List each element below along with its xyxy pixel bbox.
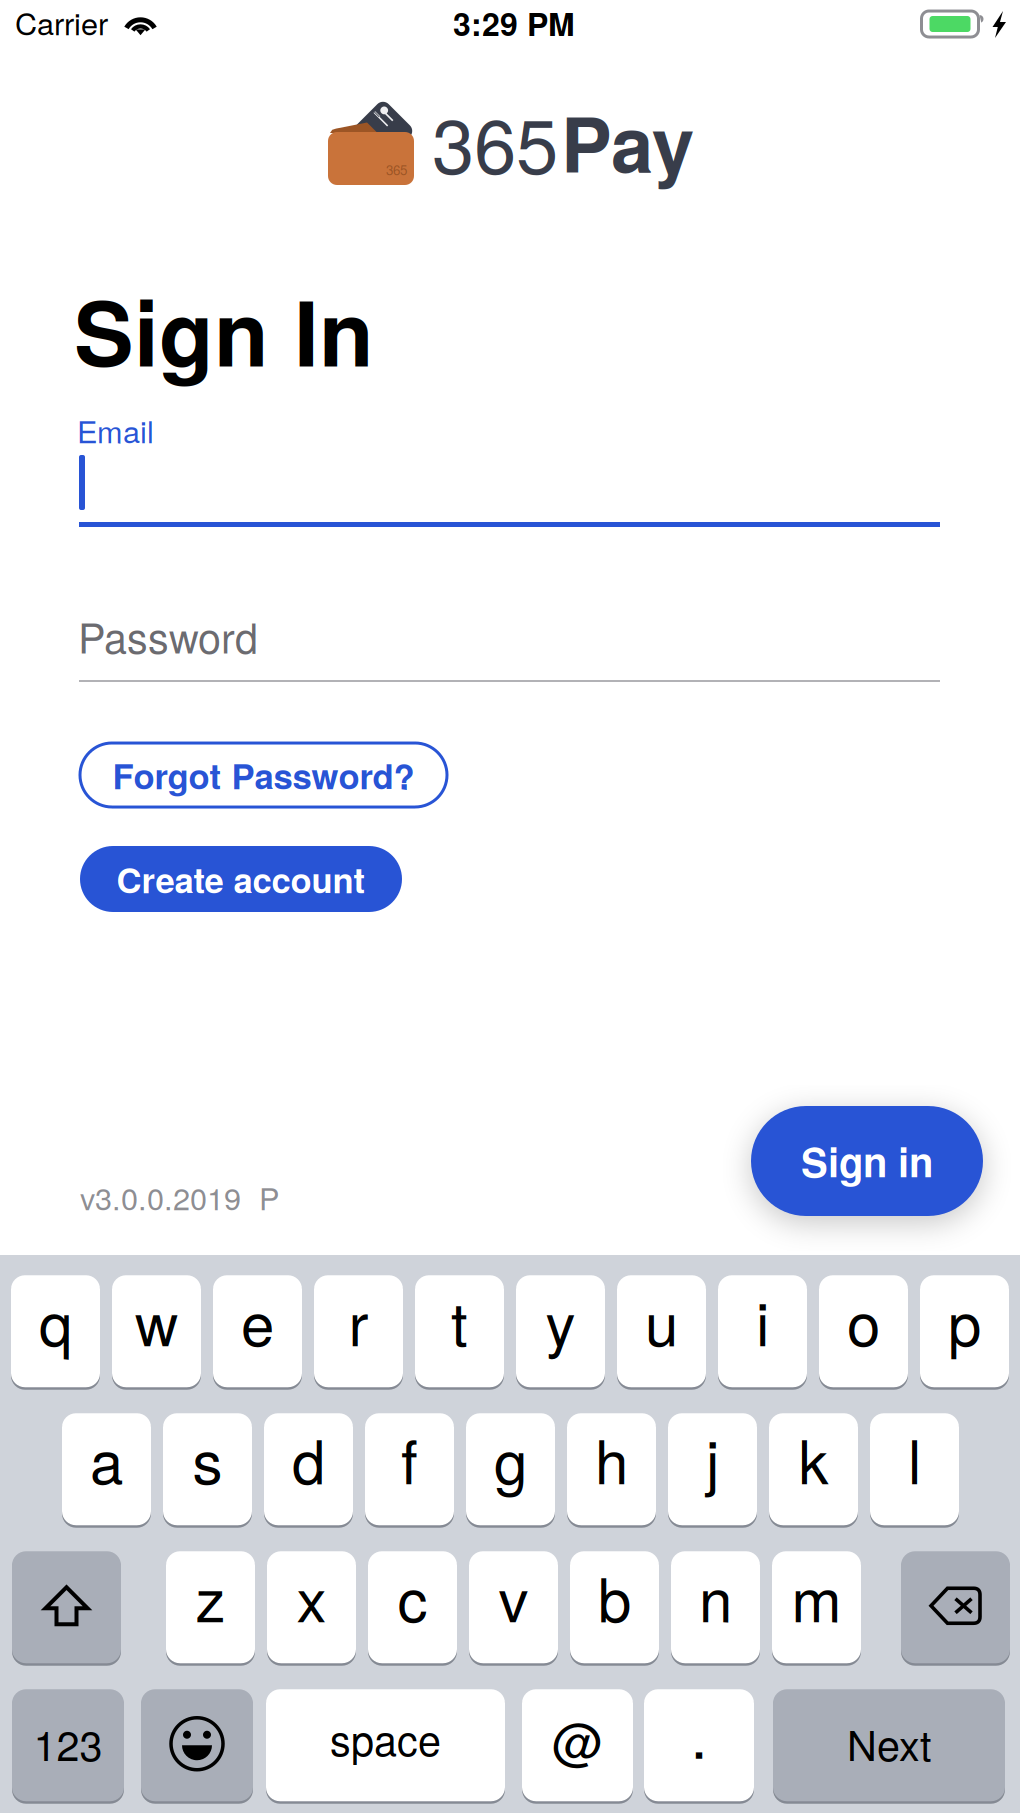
staticText: Email [77,408,154,452]
staticText: t [451,1277,468,1363]
staticText: . [690,1688,707,1776]
button[interactable]: w [112,1274,201,1388]
staticText: z [195,1553,225,1639]
staticText: @ [552,1703,603,1776]
staticText: v3.0.0.2019 P [80,1175,279,1219]
button[interactable]: Emoji [141,1688,253,1802]
staticText: q [39,1277,72,1363]
button[interactable]: z [166,1550,255,1664]
button[interactable]: t [415,1274,504,1388]
button[interactable]: x [267,1550,356,1664]
staticText: y [545,1277,575,1363]
button[interactable]: q [11,1274,100,1388]
staticText: Sign in [801,1132,933,1190]
staticText: w [135,1277,178,1363]
button[interactable]: s [163,1412,252,1526]
button[interactable]: d [264,1412,353,1526]
staticText: o [847,1277,880,1363]
staticText: Next [847,1714,931,1773]
button[interactable]: b [570,1550,659,1664]
staticText: Forgot Password? [112,750,414,800]
button[interactable]: g [466,1412,555,1526]
staticText: l [908,1415,921,1501]
staticText: u [645,1277,678,1363]
staticText: d [292,1415,325,1501]
staticText: c [397,1553,427,1639]
button[interactable]: j [668,1412,757,1526]
staticText: e [241,1277,274,1363]
staticText: Create account [116,854,365,904]
staticText: b [598,1553,631,1639]
button[interactable]: c [368,1550,457,1664]
staticText: a [90,1415,123,1501]
staticText: r [348,1277,368,1363]
staticText: 123 [33,1714,102,1773]
button[interactable]: Create account [80,846,402,912]
staticText: h [595,1415,628,1501]
staticText: 365 [432,87,558,196]
button[interactable]: Forgot Password? [80,743,447,807]
staticText: Pay [561,87,694,196]
button[interactable]: v [469,1550,558,1664]
button[interactable]: h [567,1412,656,1526]
button[interactable]: Shift [12,1550,121,1664]
staticText: m [791,1553,841,1639]
button[interactable]: Next [773,1688,1005,1802]
button[interactable]: . [644,1688,754,1802]
staticText: x [296,1553,326,1639]
staticText: Carrier [15,0,108,44]
button[interactable]: space [266,1688,505,1802]
button[interactable]: @ [522,1688,633,1802]
button[interactable]: Sign in [751,1106,983,1216]
button[interactable]: p [920,1274,1009,1388]
button[interactable]: k [769,1412,858,1526]
staticText: 3:29 PM [453,0,575,46]
staticText: Password [78,606,258,665]
staticText: 365 [386,160,407,179]
staticText: v [498,1553,528,1639]
staticText: Sign In [74,266,374,394]
staticText: g [494,1415,527,1501]
button[interactable]: e [213,1274,302,1388]
staticText: p [948,1277,981,1363]
button[interactable]: m [772,1550,861,1664]
button[interactable]: f [365,1412,454,1526]
button[interactable]: u [617,1274,706,1388]
staticText: n [699,1553,732,1639]
staticText: space [330,1709,441,1768]
button[interactable]: i [718,1274,807,1388]
staticText: i [756,1277,769,1363]
button[interactable]: y [516,1274,605,1388]
staticText: s [192,1415,222,1501]
button[interactable]: r [314,1274,403,1388]
button[interactable]: o [819,1274,908,1388]
staticText: f [401,1415,418,1501]
staticText: k [798,1415,828,1501]
button[interactable]: a [62,1412,151,1526]
staticText: j [706,1415,719,1501]
button[interactable]: l [870,1412,959,1526]
button[interactable]: 123 [12,1688,124,1802]
button[interactable]: n [671,1550,760,1664]
button[interactable]: Delete [901,1550,1010,1664]
